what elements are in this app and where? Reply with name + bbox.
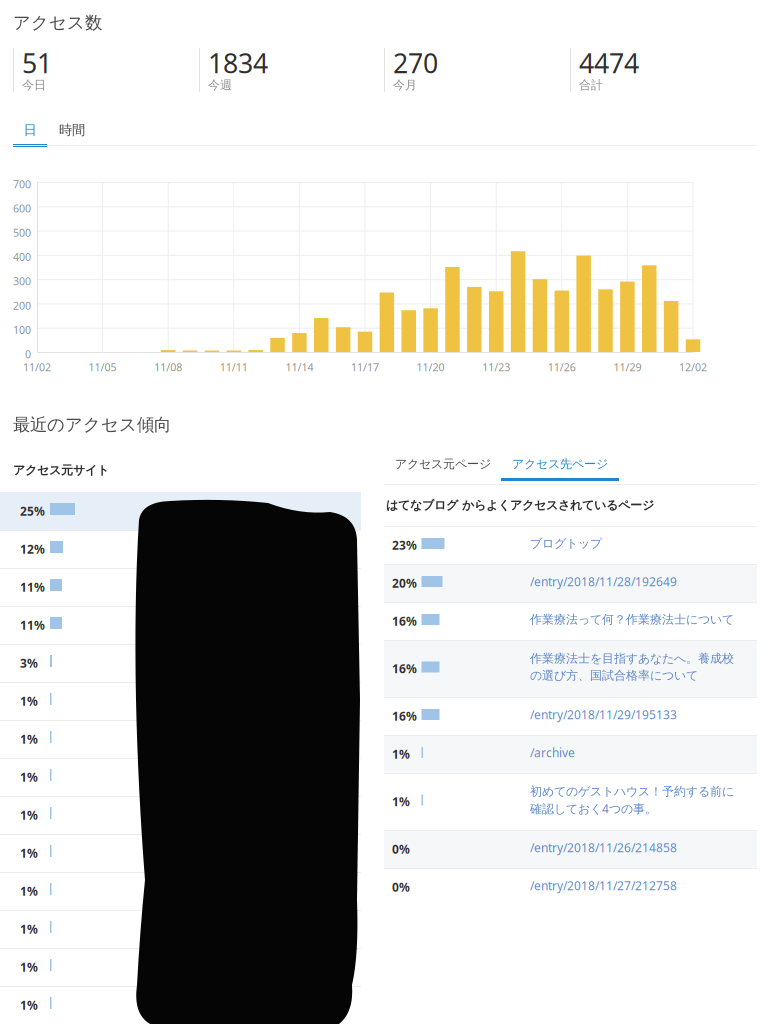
staticText: 16% xyxy=(392,613,417,629)
button[interactable]: 1% xyxy=(0,720,361,758)
staticText: 今週 xyxy=(208,78,232,92)
button[interactable]: 1% xyxy=(0,872,361,910)
button[interactable]: 1% xyxy=(0,796,361,834)
staticText: /entry/2018/11/29/195133 xyxy=(530,706,677,722)
button[interactable]: 日 xyxy=(13,121,47,147)
staticText: 200 xyxy=(13,298,31,313)
staticText: 11/20 xyxy=(417,360,445,374)
staticText: 23% xyxy=(392,537,417,553)
button[interactable]: 11% xyxy=(0,606,361,644)
staticText: 11/23 xyxy=(482,360,510,374)
button[interactable]: 23% xyxy=(384,526,757,564)
staticText: 1% xyxy=(20,731,38,747)
staticText: 1% xyxy=(20,921,38,937)
staticText: 11/08 xyxy=(154,360,182,374)
button[interactable]: アクセス先ページ xyxy=(501,453,619,482)
staticText: 今月 xyxy=(393,78,417,92)
staticText: の選び方、国試合格率について xyxy=(530,668,698,683)
button[interactable]: 16% xyxy=(384,602,757,640)
staticText: 11% xyxy=(20,579,45,595)
staticText: 確認しておく4つの事。 xyxy=(530,800,657,816)
staticText: 400 xyxy=(13,250,31,264)
staticText: 270 xyxy=(393,45,438,81)
staticText: 1% xyxy=(20,693,38,709)
staticText: 最近のアクセス傾向 xyxy=(13,414,171,435)
staticText: 16% xyxy=(392,708,417,724)
staticText: 3% xyxy=(20,655,38,671)
staticText: 11/29 xyxy=(613,360,641,374)
staticText: 作業療法士を目指すあなたへ。養成校 xyxy=(530,651,734,666)
staticText: 今日 xyxy=(22,78,46,92)
staticText: 11/17 xyxy=(351,360,379,374)
button[interactable]: 1% xyxy=(0,948,361,986)
button[interactable]: 3% xyxy=(0,644,361,682)
staticText: 1% xyxy=(20,769,38,785)
staticText: 12% xyxy=(20,541,45,557)
staticText: 700 xyxy=(13,177,31,191)
button[interactable]: 時間 xyxy=(55,121,89,147)
staticText: /entry/2018/11/26/214858 xyxy=(530,839,677,855)
button[interactable]: 20% xyxy=(384,564,757,602)
staticText: 16% xyxy=(392,660,417,676)
staticText: 25% xyxy=(20,503,45,519)
staticText: 1834 xyxy=(208,45,268,81)
staticText: 11/05 xyxy=(89,360,117,374)
staticText: アクセス数 xyxy=(13,12,102,33)
button[interactable]: 1% xyxy=(0,834,361,872)
staticText: 600 xyxy=(13,201,31,215)
button[interactable]: 25% xyxy=(0,492,361,530)
button[interactable]: 16% xyxy=(384,697,757,735)
staticText: 11/11 xyxy=(220,360,248,374)
button[interactable]: 12% xyxy=(0,530,361,568)
staticText: 1% xyxy=(392,793,410,809)
staticText: ブログトップ xyxy=(530,536,602,551)
staticText: 合計 xyxy=(579,78,603,92)
staticText: 0% xyxy=(392,841,410,857)
staticText: 300 xyxy=(13,274,31,288)
button[interactable]: 1% xyxy=(0,682,361,720)
staticText: /archive xyxy=(530,744,575,760)
staticText: アクセス元サイト xyxy=(13,463,109,478)
staticText: 1% xyxy=(20,807,38,823)
staticText: 11/02 xyxy=(23,360,51,374)
staticText: 500 xyxy=(13,226,31,240)
staticText: 11/26 xyxy=(548,360,576,374)
staticText: 1% xyxy=(20,959,38,975)
staticText: 1% xyxy=(20,845,38,861)
button[interactable]: 1% xyxy=(384,735,757,773)
staticText: 1% xyxy=(392,746,410,762)
staticText: 51 xyxy=(22,45,52,81)
staticText: /entry/2018/11/27/212758 xyxy=(530,877,677,893)
staticText: 時間 xyxy=(59,122,85,138)
staticText: 11/14 xyxy=(285,360,313,374)
button[interactable]: アクセス元ページ xyxy=(384,453,502,482)
staticText: 100 xyxy=(13,323,31,337)
button[interactable]: 0% xyxy=(384,868,757,906)
staticText: アクセス元ページ xyxy=(395,457,491,471)
button[interactable]: 1% xyxy=(0,986,361,1024)
staticText: 1% xyxy=(20,997,38,1013)
staticText: 初めてのゲストハウス！予約する前に xyxy=(530,784,734,799)
staticText: 12/02 xyxy=(679,360,707,374)
button[interactable]: 16% xyxy=(384,640,757,697)
staticText: 11% xyxy=(20,617,45,633)
button[interactable]: 1% xyxy=(0,910,361,948)
staticText: 0 xyxy=(25,347,31,361)
button[interactable]: 1% xyxy=(0,758,361,796)
staticText: 日 xyxy=(23,122,36,138)
button[interactable]: 0% xyxy=(384,830,757,868)
staticText: はてなブログ からよくアクセスされているページ xyxy=(386,498,654,513)
staticText: 0% xyxy=(392,879,410,895)
staticText: 作業療法って何？作業療法士について xyxy=(530,612,734,627)
staticText: 1% xyxy=(20,883,38,899)
staticText: 4474 xyxy=(579,45,639,81)
staticText: 20% xyxy=(392,575,417,591)
button[interactable]: 11% xyxy=(0,568,361,606)
button[interactable]: 1% xyxy=(384,773,757,830)
staticText: アクセス先ページ xyxy=(512,457,608,471)
staticText: /entry/2018/11/28/192649 xyxy=(530,573,677,589)
